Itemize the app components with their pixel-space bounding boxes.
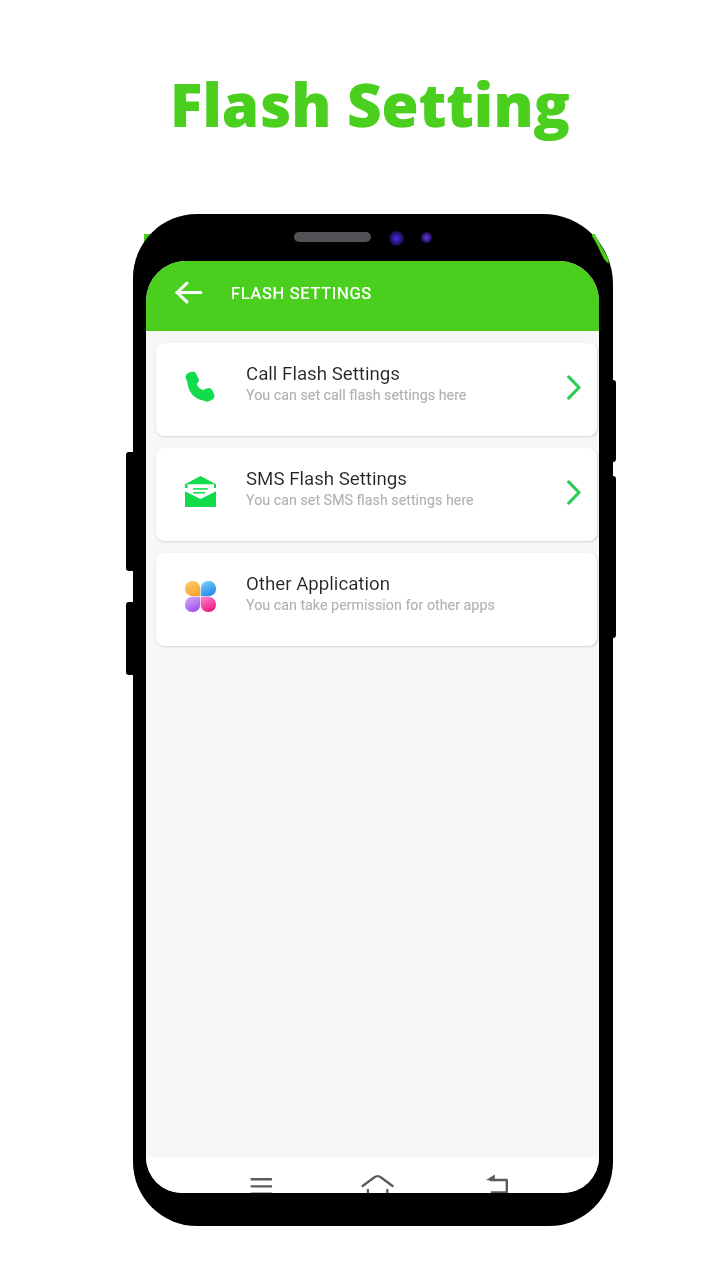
button[interactable]: Home bbox=[353, 1159, 401, 1193]
button[interactable]: Call Flash Settings bbox=[156, 343, 597, 436]
staticText: You can set SMS flash settings here bbox=[246, 492, 474, 509]
staticText: You can take permission for other apps bbox=[246, 597, 495, 614]
button[interactable]: Back bbox=[472, 1157, 520, 1193]
staticText: FLASH SETTINGS bbox=[231, 284, 372, 303]
staticText: Other Application bbox=[246, 573, 390, 595]
button[interactable]: SMS Flash Settings bbox=[156, 448, 597, 541]
button[interactable]: Other Application bbox=[156, 553, 597, 646]
staticText: Call Flash Settings bbox=[246, 363, 400, 385]
staticText: SMS Flash Settings bbox=[246, 468, 407, 490]
button[interactable]: Back bbox=[165, 269, 211, 315]
staticText: You can set call flash settings here bbox=[246, 387, 467, 404]
staticText: Flash Setting bbox=[10, 63, 720, 145]
button[interactable]: Recent apps bbox=[237, 1158, 285, 1193]
